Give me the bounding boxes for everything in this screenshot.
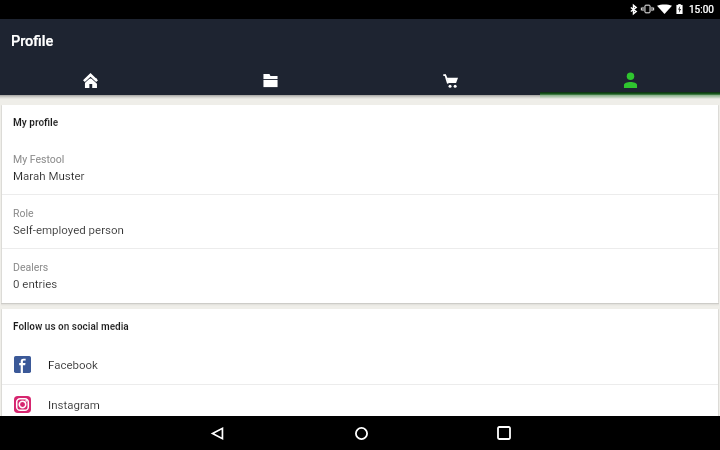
button[interactable]: Facebook [2, 345, 718, 384]
staticText: My profile [13, 117, 59, 129]
button[interactable]: Shopping cart [360, 63, 540, 95]
button[interactable]: My Festool [2, 141, 718, 194]
staticText: Instagram [48, 398, 100, 411]
staticText: My Festool [13, 153, 65, 165]
button[interactable]: Role [2, 195, 718, 248]
staticText: Dealers [13, 261, 49, 273]
button[interactable]: Profile [540, 63, 720, 95]
button[interactable]: Home [0, 63, 180, 95]
staticText: 0 entries [13, 277, 58, 290]
button[interactable]: Recent apps [487, 416, 521, 450]
button[interactable]: Back [200, 416, 234, 450]
button[interactable]: Instagram [2, 385, 718, 416]
staticText: Marah Muster [13, 169, 85, 182]
button[interactable]: Documents [180, 63, 360, 95]
staticText: Profile [11, 33, 54, 50]
staticText: Follow us on social media [13, 321, 129, 333]
button[interactable]: Dealers [2, 249, 718, 303]
staticText: Facebook [48, 358, 98, 371]
staticText: Role [13, 207, 34, 219]
staticText: Self-employed person [13, 223, 124, 236]
staticText: 15:00 [689, 4, 714, 16]
button[interactable]: Home [344, 416, 378, 450]
